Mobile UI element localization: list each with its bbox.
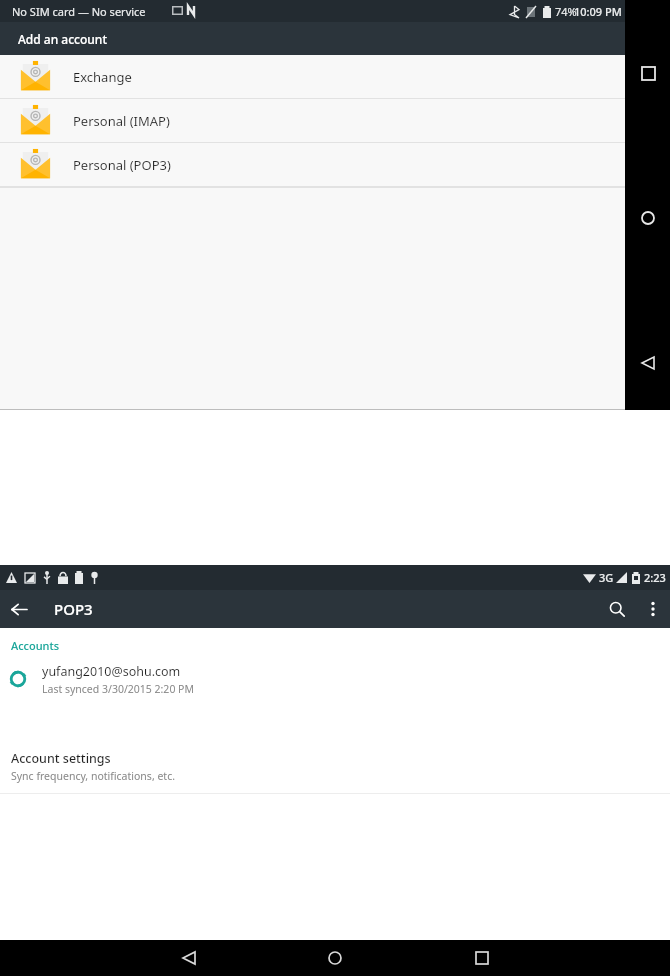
staticText: POP3: [54, 599, 93, 619]
staticText: 10:09 PM: [574, 4, 622, 19]
staticText: 3G: [599, 570, 614, 585]
button[interactable]: Home: [633, 203, 663, 233]
staticText: Accounts: [11, 638, 60, 653]
staticText: Account settings: [11, 750, 111, 767]
staticText: No SIM card — No service: [12, 4, 146, 19]
button[interactable]: More options: [636, 592, 670, 626]
button[interactable]: Home: [317, 940, 353, 976]
staticText: Add an account: [18, 31, 107, 47]
button[interactable]: Account settings: [0, 748, 670, 793]
button[interactable]: Back: [171, 940, 207, 976]
button[interactable]: Personal (IMAP): [0, 99, 625, 142]
button[interactable]: Exchange: [0, 55, 625, 98]
staticText: Exchange: [73, 68, 132, 86]
staticText: Personal (POP3): [73, 156, 171, 174]
staticText: Sync frequency, notifications, etc.: [11, 769, 175, 783]
button[interactable]: Search: [598, 590, 636, 628]
button[interactable]: yufang2010@sohu.com: [0, 653, 670, 705]
button[interactable]: Recents: [464, 940, 500, 976]
button[interactable]: Back: [633, 348, 663, 378]
staticText: 2:23: [644, 570, 666, 585]
button[interactable]: Recents: [633, 58, 663, 88]
button[interactable]: Back: [0, 590, 38, 628]
staticText: yufang2010@sohu.com: [42, 663, 181, 680]
button[interactable]: Personal (POP3): [0, 143, 625, 186]
staticText: 74%: [555, 4, 577, 19]
staticText: Last synced 3/30/2015 2:20 PM: [42, 682, 194, 696]
staticText: Personal (IMAP): [73, 112, 170, 130]
